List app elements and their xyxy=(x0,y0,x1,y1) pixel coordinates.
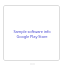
button[interactable]: Google Play Store xyxy=(3,34,60,39)
button[interactable]: Sample software info xyxy=(3,29,60,34)
staticText: Google Play Store xyxy=(16,34,48,39)
staticText: oo xyxy=(30,61,35,66)
staticText: Sample software info xyxy=(13,29,51,34)
